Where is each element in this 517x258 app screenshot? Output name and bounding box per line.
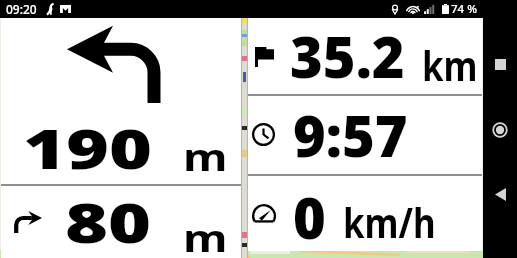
- button[interactable]: Recent apps: [488, 52, 512, 76]
- button[interactable]: 80: [1, 186, 241, 258]
- staticText: 80: [65, 185, 152, 257]
- button[interactable]: 190: [1, 18, 241, 184]
- staticText: km/h: [343, 194, 436, 250]
- staticText: 09:20: [6, 1, 37, 17]
- button[interactable]: 0: [248, 176, 482, 251]
- staticText: 190: [23, 111, 152, 185]
- staticText: 9:57: [293, 97, 408, 173]
- button[interactable]: 9:57: [248, 96, 482, 174]
- staticText: m: [183, 211, 229, 258]
- staticText: km: [422, 37, 478, 93]
- button[interactable]: Back: [488, 182, 512, 206]
- staticText: m: [183, 130, 229, 182]
- staticText: 74 %: [451, 1, 477, 17]
- staticText: 35.2: [290, 18, 405, 94]
- button[interactable]: Home: [488, 118, 512, 142]
- staticText: 0: [293, 179, 326, 254]
- button[interactable]: 35.2: [248, 18, 482, 94]
